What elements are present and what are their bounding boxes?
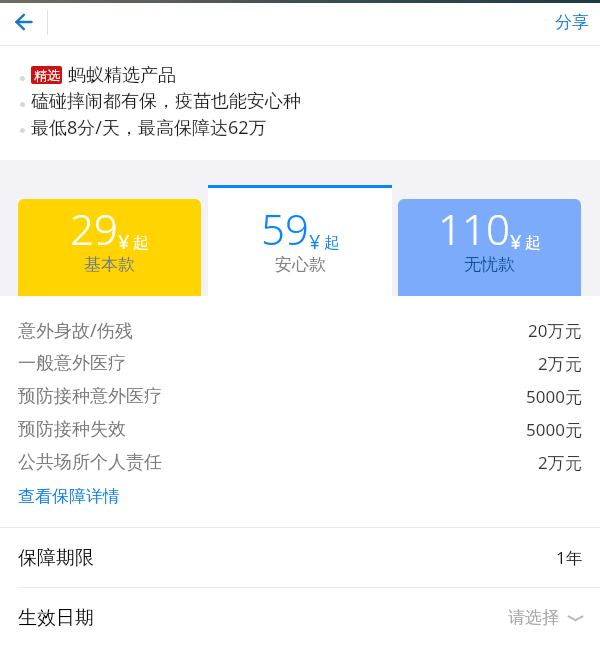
staticText: 1年: [556, 546, 583, 569]
staticText: 请选择: [508, 607, 559, 628]
staticText: 预防接种意外医疗: [18, 385, 162, 408]
button[interactable]: 保障期限: [0, 528, 600, 587]
staticText: 蚂蚁精选产品: [68, 64, 176, 87]
button[interactable]: 分享: [537, 3, 600, 45]
staticText: 起: [525, 233, 541, 253]
staticText: 基本款: [84, 254, 135, 275]
staticText: 保障期限: [18, 546, 94, 570]
button[interactable]: Back: [0, 3, 47, 45]
button[interactable]: 59: [208, 185, 392, 296]
staticText: 磕碰摔闹都有保，疫苗也能安心种: [31, 90, 301, 113]
button[interactable]: 生效日期: [0, 588, 600, 647]
staticText: 5000元: [526, 385, 582, 408]
button[interactable]: 意外身故/伤残: [0, 314, 600, 347]
button[interactable]: 公共场所个人责任: [0, 446, 600, 479]
staticText: 分享: [555, 12, 589, 33]
button[interactable]: 查看保障详情: [0, 479, 130, 519]
staticText: 最低8分/天，最高保障达62万: [31, 115, 267, 140]
staticText: 预防接种失效: [18, 418, 126, 441]
staticText: 110: [438, 200, 510, 257]
staticText: 安心款: [275, 254, 326, 275]
staticText: 无忧款: [464, 254, 515, 275]
button[interactable]: 一般意外医疗: [0, 347, 600, 380]
button[interactable]: 预防接种失效: [0, 413, 600, 446]
staticText: 5000元: [526, 418, 582, 441]
button[interactable]: 预防接种意外医疗: [0, 380, 600, 413]
staticText: ¥: [510, 228, 522, 255]
staticText: 意外身故/伤残: [18, 318, 133, 343]
staticText: 生效日期: [18, 606, 94, 630]
staticText: 公共场所个人责任: [18, 451, 162, 474]
staticText: 起: [324, 233, 340, 253]
staticText: 起: [133, 233, 149, 253]
staticText: ¥: [118, 228, 130, 255]
staticText: 20万元: [528, 319, 582, 342]
staticText: 一般意外医疗: [18, 352, 126, 375]
staticText: 59: [261, 200, 309, 257]
staticText: 精选: [34, 67, 60, 83]
staticText: 2万元: [538, 352, 582, 375]
staticText: 查看保障详情: [18, 486, 120, 507]
button[interactable]: 110: [398, 199, 581, 296]
staticText: 2万元: [538, 451, 582, 474]
button[interactable]: 29: [18, 199, 201, 296]
staticText: ¥: [309, 228, 321, 255]
staticText: 29: [70, 200, 118, 257]
